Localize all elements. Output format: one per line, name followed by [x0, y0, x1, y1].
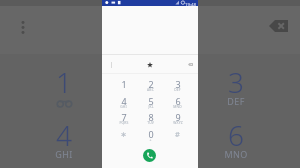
- staticText: +: [149, 137, 152, 142]
- staticText: ∗: [120, 130, 127, 139]
- button[interactable]: 4: [111, 93, 136, 109]
- staticText: MNO: [173, 104, 182, 109]
- staticText: 8: [148, 111, 154, 123]
- staticText: 4: [121, 95, 127, 107]
- staticText: MNO: [224, 148, 248, 160]
- button[interactable]: Backspace: [265, 16, 291, 36]
- staticText: WXYZ: [173, 120, 183, 125]
- staticText: TUV: [147, 120, 154, 125]
- staticText: 0: [148, 128, 154, 140]
- button[interactable]: 3: [165, 76, 190, 92]
- staticText: 6: [228, 116, 244, 154]
- button[interactable]: More options: [14, 16, 32, 38]
- staticText: 1: [56, 63, 72, 101]
- staticText: ABC: [147, 87, 154, 92]
- staticText: 19:48: [185, 1, 196, 7]
- staticText: 2: [148, 78, 154, 90]
- button[interactable]: 4: [36, 109, 92, 161]
- button[interactable]: 2: [138, 76, 163, 92]
- staticText: 4: [56, 116, 72, 154]
- button[interactable]: 1: [36, 56, 92, 108]
- button[interactable]: 3: [208, 56, 264, 108]
- staticText: DEF: [227, 95, 245, 107]
- button[interactable]: 0: [138, 126, 163, 142]
- staticText: 1: [121, 78, 127, 90]
- staticText: PQRS: [119, 120, 129, 125]
- staticText: 3: [228, 63, 244, 101]
- staticText: 6: [175, 95, 181, 107]
- button[interactable]: 9: [165, 109, 190, 125]
- staticText: GHI: [120, 104, 127, 109]
- button[interactable]: #: [165, 126, 190, 142]
- button[interactable]: 6: [165, 93, 190, 109]
- button[interactable]: ∗: [111, 126, 136, 142]
- staticText: 7: [121, 111, 127, 123]
- button[interactable]: Call: [143, 149, 156, 162]
- button[interactable]: 6: [208, 109, 264, 161]
- button[interactable]: 8: [138, 109, 163, 125]
- staticText: #: [175, 129, 180, 139]
- staticText: 3: [175, 78, 181, 90]
- button[interactable]: 5: [138, 93, 163, 109]
- button[interactable]: Delete: [184, 59, 196, 70]
- staticText: 5: [148, 95, 154, 107]
- button[interactable]: 1: [111, 76, 136, 92]
- staticText: GHI: [55, 148, 73, 160]
- staticText: DEF: [174, 87, 181, 92]
- staticText: JKL: [148, 104, 154, 109]
- button[interactable]: 7: [111, 109, 136, 125]
- staticText: 9: [175, 111, 181, 123]
